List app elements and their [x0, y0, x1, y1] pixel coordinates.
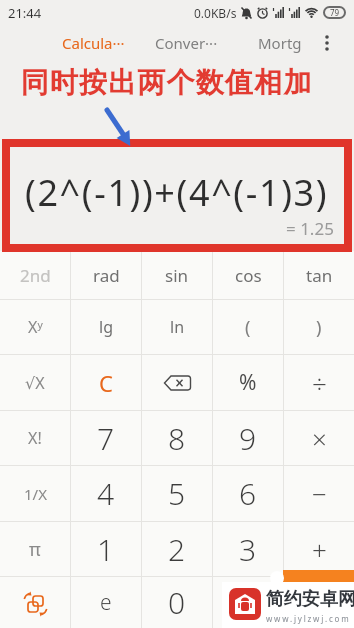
button[interactable]	[312, 28, 342, 58]
staticText: sin	[165, 264, 189, 287]
staticText: Conver···	[155, 33, 218, 53]
staticText: 7	[97, 418, 115, 459]
button[interactable]: 0	[142, 577, 212, 628]
button[interactable]: (	[213, 300, 283, 354]
button[interactable]: 7	[71, 411, 141, 465]
button[interactable]: 2nd	[0, 251, 70, 299]
button[interactable]: rad	[71, 251, 141, 299]
staticText: cos	[235, 264, 262, 287]
staticText: Calcula···	[62, 33, 125, 53]
button[interactable]: sin	[142, 251, 212, 299]
button[interactable]: ÷	[284, 355, 354, 410]
button[interactable]: X!	[0, 411, 70, 465]
button[interactable]: ×	[284, 411, 354, 465]
staticText: =	[311, 582, 326, 617]
staticText: C	[99, 368, 113, 398]
staticText: e	[100, 588, 112, 617]
button[interactable]: +	[284, 522, 354, 576]
button[interactable]: e	[71, 577, 141, 628]
button[interactable]: 6	[213, 466, 283, 521]
staticText: √X	[25, 372, 45, 394]
button[interactable]: 4	[71, 466, 141, 521]
staticText: www.jylzwj.com	[266, 613, 351, 624]
button[interactable]: 8	[142, 411, 212, 465]
button[interactable]: π	[0, 522, 70, 576]
button[interactable]: cos	[213, 251, 283, 299]
button[interactable]: 3	[213, 522, 283, 576]
button[interactable]: 1	[71, 522, 141, 576]
staticText: 简约安卓网	[266, 588, 354, 611]
staticText: −	[312, 476, 327, 511]
staticText: Xʸ	[28, 316, 43, 338]
button[interactable]: 5	[142, 466, 212, 521]
button[interactable]: .	[213, 577, 283, 628]
staticText: (	[245, 315, 251, 340]
button[interactable]: Conver···	[155, 33, 218, 53]
staticText: 8	[168, 418, 186, 459]
staticText: 5	[168, 473, 186, 514]
staticText: = 1.25	[286, 217, 334, 240]
button[interactable]: %	[213, 355, 283, 410]
staticText: 1/X	[24, 484, 47, 504]
staticText: ×	[312, 421, 327, 456]
staticText: 2nd	[20, 264, 51, 287]
button[interactable]	[142, 355, 212, 410]
staticText: rad	[93, 264, 120, 287]
button[interactable]: −	[284, 466, 354, 521]
button[interactable]: lg	[71, 300, 141, 354]
staticText: Mortg	[258, 33, 302, 53]
staticText: )	[316, 315, 322, 340]
staticText: 4	[97, 473, 115, 514]
button[interactable]: tan	[284, 251, 354, 299]
button[interactable]: √X	[0, 355, 70, 410]
button[interactable]: C	[71, 355, 141, 410]
staticText: 0	[168, 582, 186, 623]
button[interactable]: 2	[142, 522, 212, 576]
button[interactable]: 1/X	[0, 466, 70, 521]
staticText: ln	[170, 316, 185, 338]
staticText: .	[244, 582, 252, 623]
staticText: 1	[97, 529, 115, 570]
staticText: 6	[239, 473, 257, 514]
staticText: %	[239, 368, 257, 397]
staticText: 0.0KB/s	[194, 5, 237, 21]
button[interactable]: 9	[213, 411, 283, 465]
staticText: +	[312, 532, 327, 567]
staticText: 9	[239, 418, 257, 459]
staticText: (2^(-1))+(4^(-1)3)	[25, 168, 329, 217]
button[interactable]	[0, 577, 70, 628]
staticText: lg	[99, 316, 113, 338]
staticText: X!	[28, 427, 42, 449]
button[interactable]: Mortg	[258, 33, 302, 53]
staticText: 同时按出两个数值相加	[20, 65, 312, 100]
staticText: tan	[306, 264, 333, 287]
staticText: 3	[239, 529, 257, 570]
button[interactable]: ln	[142, 300, 212, 354]
staticText: 21:44	[8, 4, 42, 22]
button[interactable]: )	[284, 300, 354, 354]
button[interactable]: =	[283, 570, 354, 628]
button[interactable]: Calcula···	[62, 33, 125, 53]
staticText: ÷	[312, 365, 327, 400]
button[interactable]: Xʸ	[0, 300, 70, 354]
staticText: π	[29, 537, 41, 562]
staticText: 2	[168, 529, 186, 570]
staticText: 79	[330, 7, 340, 18]
button[interactable]	[284, 577, 354, 628]
